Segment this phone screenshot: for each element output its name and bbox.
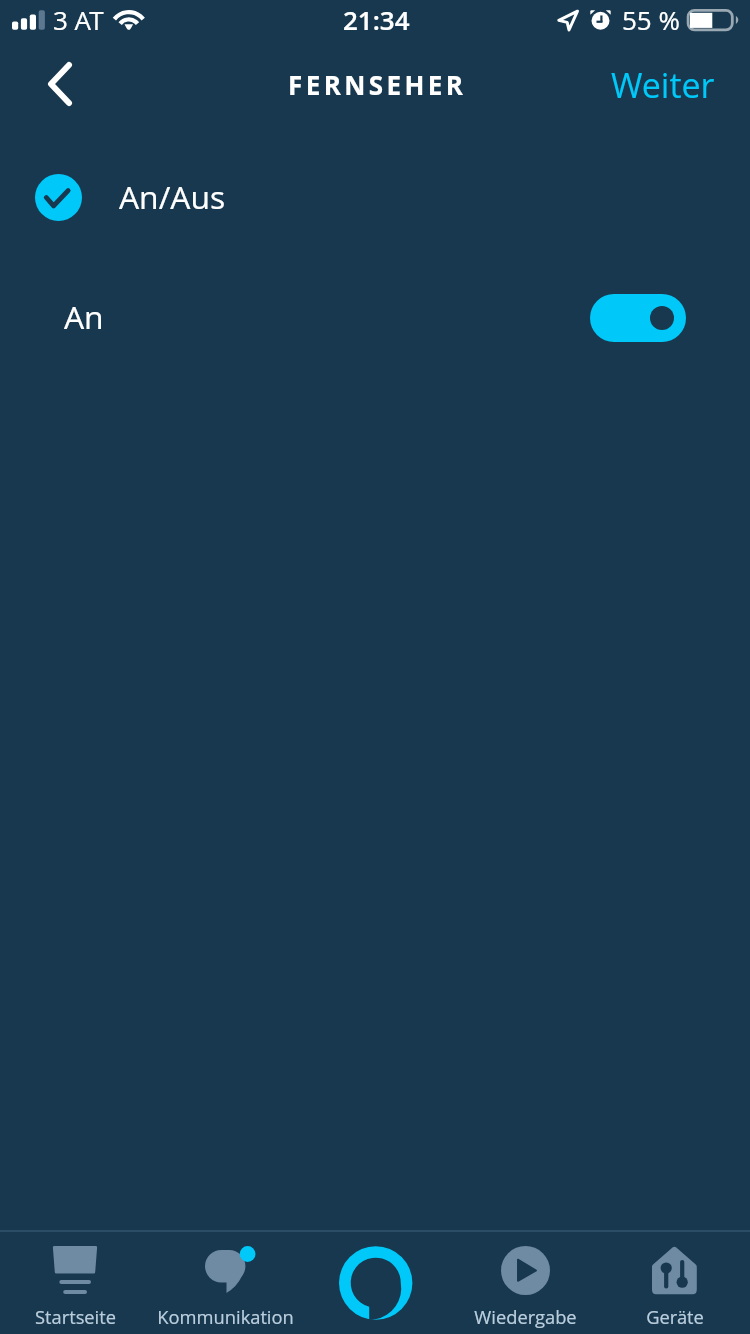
staticText: An/Aus [119,175,226,218]
staticText: Wiedergabe [474,1304,577,1329]
staticText: Startseite [35,1304,116,1329]
button[interactable]: An [0,270,750,366]
staticText: Weiter [611,62,715,108]
button[interactable]: Back [24,42,96,126]
button[interactable]: Weiter [581,43,750,127]
button[interactable]: Startseite [0,1232,150,1334]
button[interactable]: An/Aus [0,151,750,243]
button[interactable]: Wiedergabe [450,1232,600,1334]
staticText: 55 % [622,2,680,37]
button[interactable]: Kommunikation [150,1232,300,1334]
staticText: An [64,295,104,338]
staticText: 3 AT [53,2,104,37]
staticText: Geräte [646,1304,704,1329]
button[interactable]: Geräte [600,1232,750,1334]
staticText: FERNSEHER [288,67,467,102]
button[interactable]: An/Aus umschalten [590,294,686,342]
staticText: 21:34 [343,2,410,37]
button[interactable]: Alexa [300,1232,450,1334]
staticText: Kommunikation [157,1304,294,1329]
